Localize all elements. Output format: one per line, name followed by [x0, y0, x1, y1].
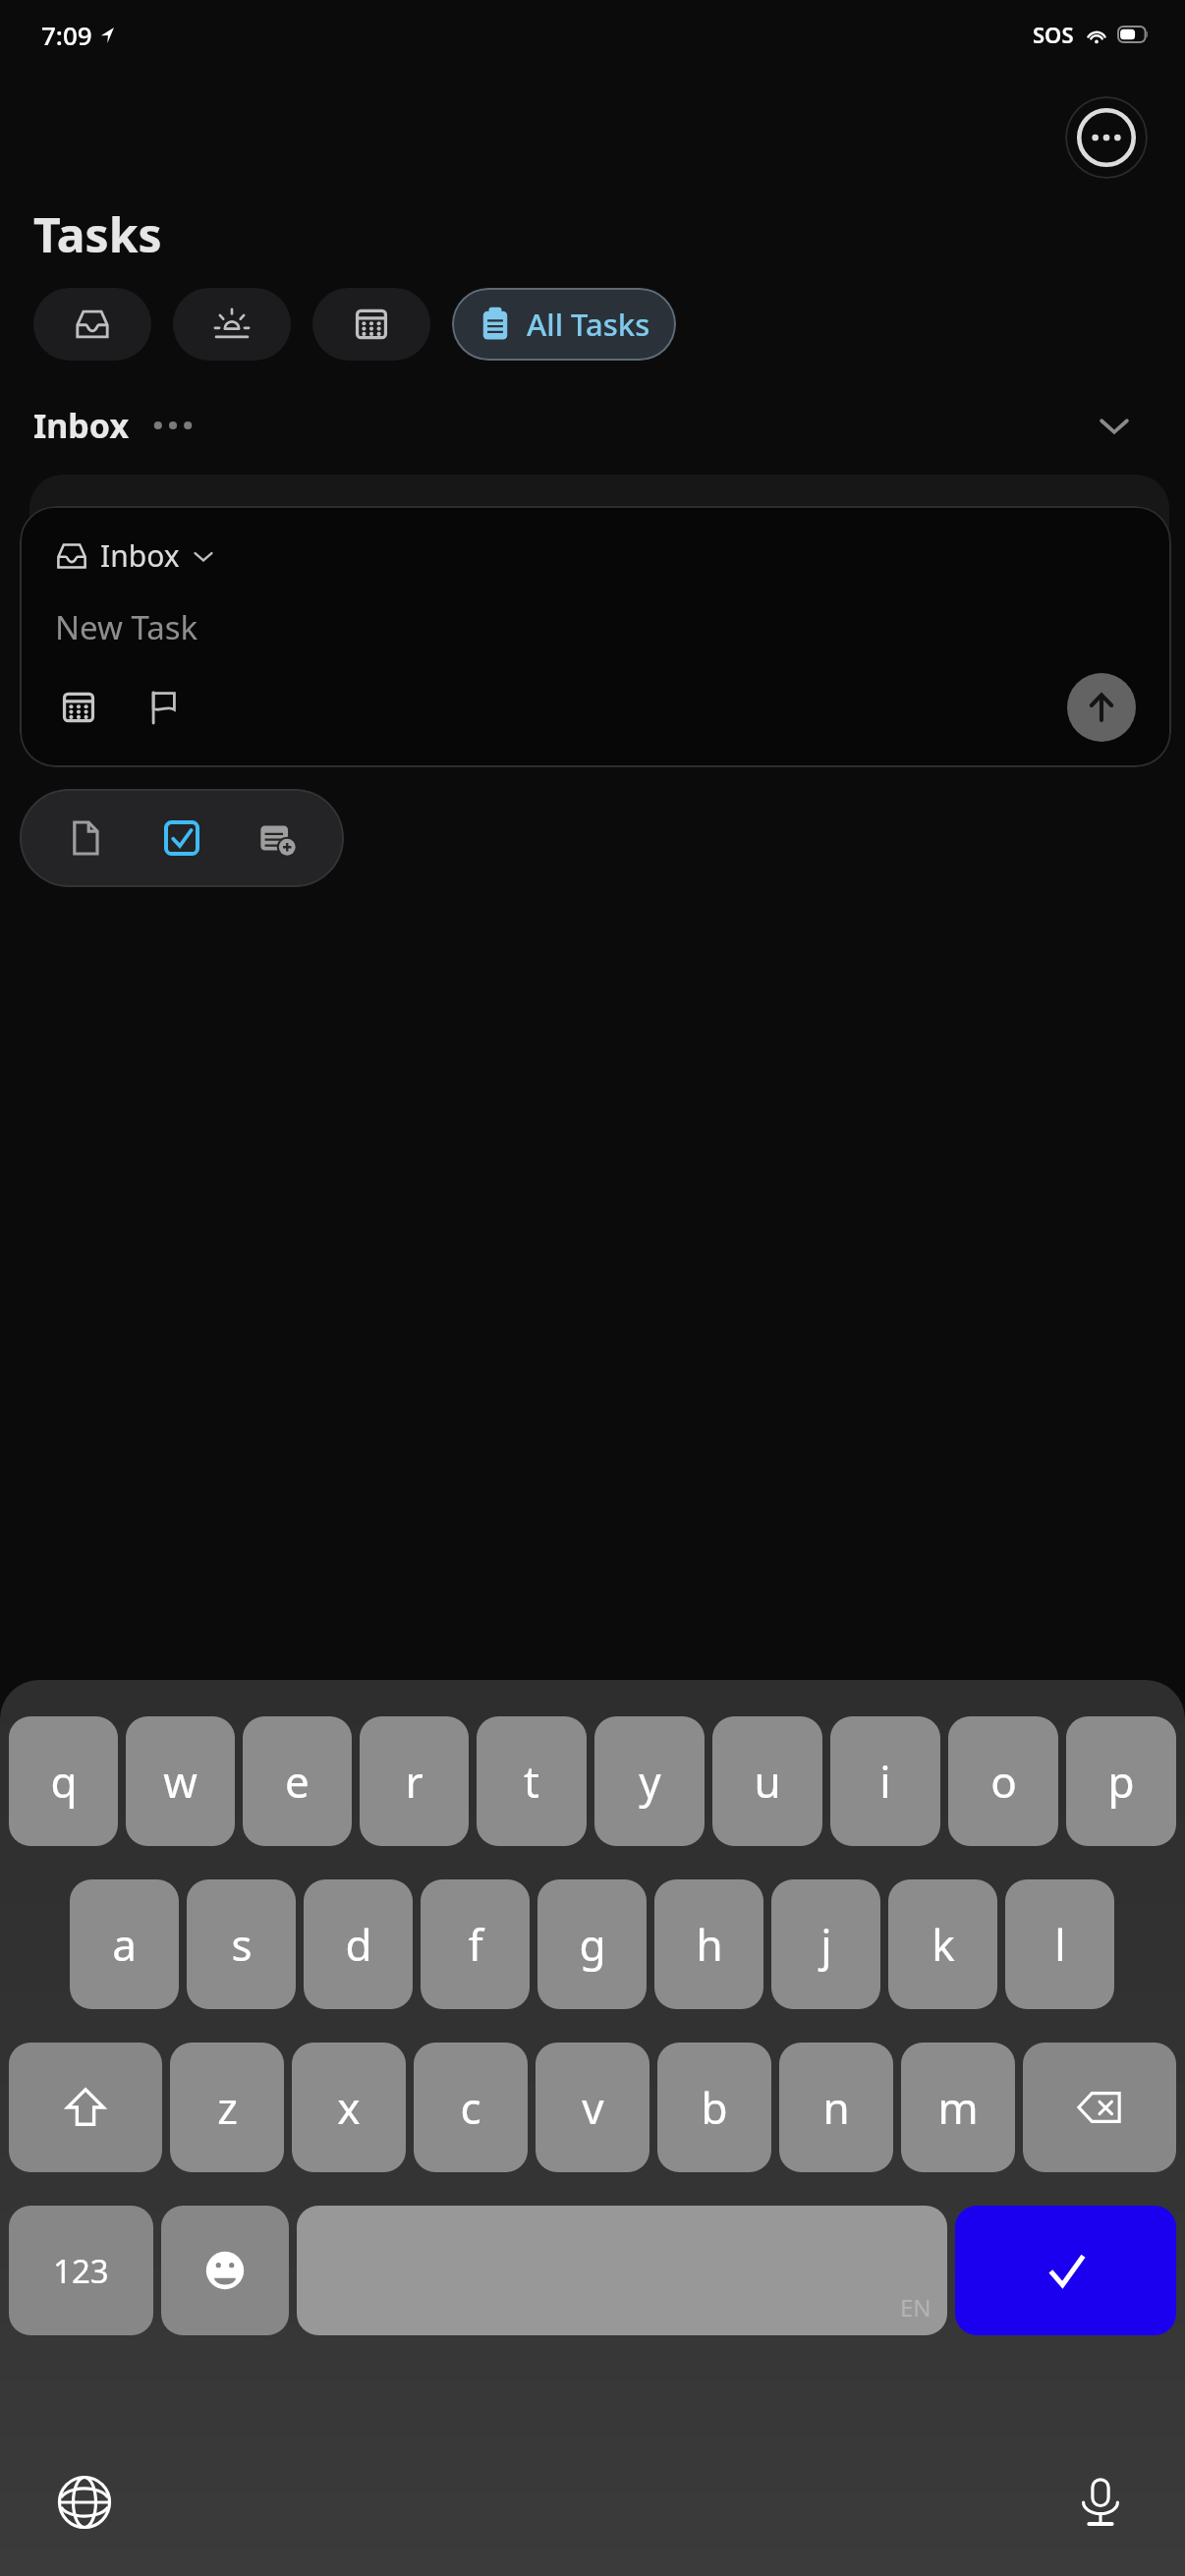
button[interactable]: k: [888, 1879, 997, 2009]
staticText: EN: [900, 2291, 931, 2324]
button[interactable]: s: [187, 1879, 296, 2009]
staticText: New Task: [55, 605, 198, 649]
staticText: b: [701, 2078, 728, 2137]
button[interactable]: w: [126, 1716, 235, 1846]
button[interactable]: n: [779, 2043, 893, 2172]
staticText: m: [937, 2078, 979, 2137]
button[interactable]: Collapse section: [1089, 400, 1140, 451]
button[interactable]: Filter: [33, 288, 151, 361]
staticText: Inbox: [100, 535, 180, 576]
button[interactable]: h: [654, 1879, 763, 2009]
staticText: n: [822, 2078, 850, 2137]
button[interactable]: Space: [297, 2206, 947, 2335]
staticText: r: [405, 1752, 423, 1811]
button[interactable]: Set date: [55, 684, 102, 731]
button[interactable]: More options: [1065, 96, 1148, 179]
staticText: c: [460, 2078, 481, 2137]
staticText: t: [524, 1752, 539, 1811]
button[interactable]: l: [1005, 1879, 1114, 2009]
button[interactable]: m: [901, 2043, 1015, 2172]
button[interactable]: q: [9, 1716, 118, 1846]
staticText: 7:09: [41, 18, 92, 52]
staticText: f: [468, 1915, 483, 1974]
staticText: SOS: [1033, 20, 1074, 49]
button[interactable]: p: [1066, 1716, 1176, 1846]
staticText: a: [112, 1915, 137, 1974]
staticText: j: [820, 1915, 832, 1974]
button[interactable]: Emoji: [161, 2206, 289, 2335]
staticText: z: [217, 2078, 238, 2137]
button[interactable]: u: [712, 1716, 822, 1846]
staticText: w: [163, 1752, 197, 1811]
staticText: v: [582, 2078, 604, 2137]
button[interactable]: v: [536, 2043, 649, 2172]
staticText: g: [579, 1915, 606, 1974]
staticText: h: [696, 1915, 723, 1974]
staticText: o: [990, 1752, 1017, 1811]
staticText: Tasks: [33, 202, 162, 266]
button[interactable]: Set priority: [140, 684, 187, 731]
button[interactable]: Inbox: [33, 403, 193, 448]
button[interactable]: Enter: [955, 2206, 1176, 2335]
staticText: d: [345, 1915, 372, 1974]
button[interactable]: i: [830, 1716, 940, 1846]
staticText: Inbox: [33, 403, 130, 448]
button[interactable]: All Tasks: [452, 288, 676, 361]
staticText: q: [50, 1752, 78, 1811]
button[interactable]: Note: [55, 808, 116, 868]
button[interactable]: x: [292, 2043, 406, 2172]
button[interactable]: Add task: [1067, 673, 1136, 742]
button[interactable]: r: [360, 1716, 469, 1846]
staticText: u: [754, 1752, 781, 1811]
staticText: k: [931, 1915, 955, 1974]
button[interactable]: d: [304, 1879, 413, 2009]
staticText: All Tasks: [527, 304, 650, 345]
button[interactable]: o: [948, 1716, 1058, 1846]
button[interactable]: Filter: [173, 288, 291, 361]
button[interactable]: Change language: [43, 2461, 126, 2544]
button[interactable]: Task: [151, 808, 212, 868]
button[interactable]: z: [170, 2043, 284, 2172]
button[interactable]: t: [477, 1716, 587, 1846]
button[interactable]: e: [243, 1716, 352, 1846]
button[interactable]: Voice input: [1059, 2461, 1142, 2544]
staticText: y: [639, 1752, 661, 1811]
staticText: p: [1107, 1752, 1135, 1811]
button[interactable]: g: [537, 1879, 647, 2009]
staticText: l: [1054, 1915, 1066, 1974]
staticText: s: [231, 1915, 253, 1974]
button[interactable]: j: [771, 1879, 880, 2009]
button[interactable]: c: [414, 2043, 528, 2172]
button[interactable]: Inbox: [20, 506, 1171, 767]
button[interactable]: y: [594, 1716, 705, 1846]
button[interactable]: Add note: [248, 808, 309, 868]
button[interactable]: Filter: [312, 288, 430, 361]
staticText: i: [879, 1752, 891, 1811]
button[interactable]: 123: [9, 2206, 153, 2335]
button[interactable]: b: [657, 2043, 771, 2172]
button[interactable]: f: [421, 1879, 530, 2009]
button[interactable]: Shift: [9, 2043, 162, 2172]
staticText: x: [337, 2078, 361, 2137]
staticText: 123: [53, 2249, 109, 2293]
button[interactable]: Backspace: [1023, 2043, 1176, 2172]
staticText: e: [285, 1752, 310, 1811]
button[interactable]: a: [70, 1879, 179, 2009]
